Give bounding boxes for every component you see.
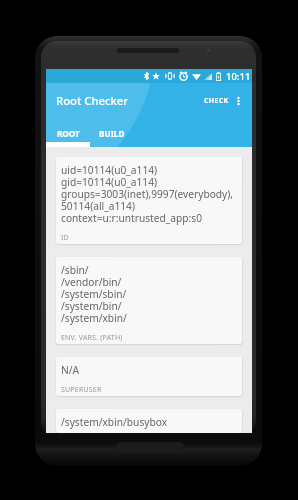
- staticText: /sbin/: [61, 265, 89, 277]
- button[interactable]: ROOT: [46, 119, 90, 147]
- staticText: /vendor/bin/: [61, 277, 122, 289]
- staticText: 10:11: [226, 70, 251, 83]
- staticText: BUILD: [99, 128, 125, 139]
- staticText: N/A: [61, 365, 80, 377]
- staticText: ENV. VARS. (PATH): [61, 333, 123, 343]
- staticText: /system/xbin/busybox: [61, 417, 168, 429]
- button[interactable]: uid=10114(u0_a114): [56, 157, 242, 244]
- button[interactable]: BUILD: [90, 119, 134, 147]
- button[interactable]: /sbin/: [56, 257, 242, 344]
- staticText: /system/xbin/: [61, 313, 127, 325]
- staticText: 50114(all_a114): [61, 201, 135, 213]
- staticText: groups=3003(inet),9997(everybody),: [61, 189, 234, 201]
- staticText: gid=10114(u0_a114): [61, 177, 158, 189]
- staticText: uid=10114(u0_a114): [61, 165, 158, 177]
- button[interactable]: N/A: [56, 357, 242, 396]
- staticText: ID: [61, 233, 69, 243]
- button[interactable]: More options: [229, 83, 247, 119]
- staticText: /system/bin/: [61, 301, 122, 313]
- staticText: SUPERUSER: [61, 385, 102, 395]
- button[interactable]: CHECK: [194, 83, 229, 119]
- staticText: Root Checker: [56, 93, 129, 108]
- button[interactable]: /system/xbin/busybox: [56, 409, 242, 433]
- staticText: CHECK: [204, 96, 229, 106]
- staticText: /system/sbin/: [61, 289, 127, 301]
- staticText: context=u:r:untrusted_app:s0: [61, 213, 202, 225]
- staticText: ROOT: [57, 128, 80, 139]
